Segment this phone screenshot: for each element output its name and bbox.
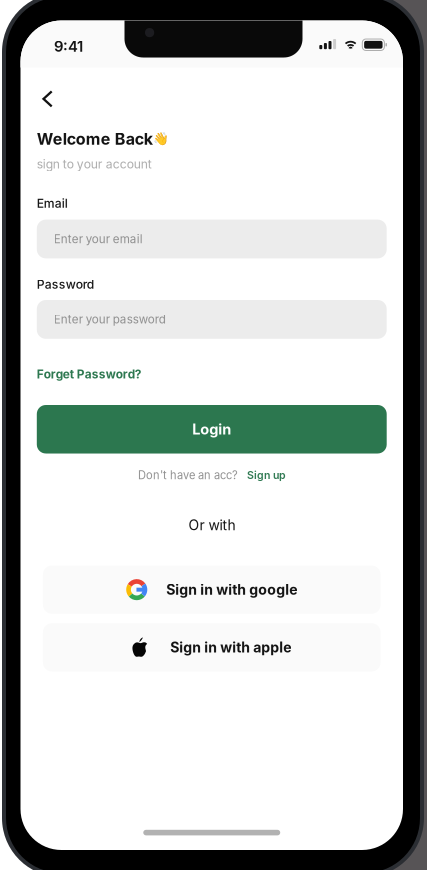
button[interactable]: Sign up bbox=[247, 469, 286, 481]
staticText: Or with bbox=[188, 517, 235, 534]
staticText: Forget Password? bbox=[37, 367, 142, 381]
staticText: sign to your account bbox=[37, 157, 152, 171]
button[interactable]: Login bbox=[37, 405, 387, 453]
staticText: Enter your email bbox=[54, 232, 143, 246]
staticText: Password bbox=[37, 277, 95, 292]
button[interactable]: Forget Password? bbox=[37, 367, 142, 381]
staticText: 👋 bbox=[153, 131, 169, 146]
button[interactable]: Sign in with apple bbox=[43, 623, 381, 671]
staticText: Sign in with google bbox=[166, 581, 297, 598]
button[interactable]: Back bbox=[32, 83, 64, 115]
button[interactable]: Enter your password bbox=[37, 300, 387, 339]
staticText: 9:41 bbox=[54, 37, 83, 55]
staticText: Welcome Back bbox=[37, 129, 153, 149]
staticText: Sign up bbox=[247, 469, 286, 481]
button[interactable]: Sign in with google bbox=[43, 565, 381, 614]
staticText: Sign in with apple bbox=[170, 639, 291, 656]
staticText: Don't have an acc? bbox=[138, 468, 238, 482]
button[interactable]: Enter your email bbox=[37, 220, 387, 258]
staticText: Email bbox=[37, 196, 68, 211]
staticText: Enter your password bbox=[54, 312, 166, 326]
staticText: Login bbox=[192, 420, 231, 438]
